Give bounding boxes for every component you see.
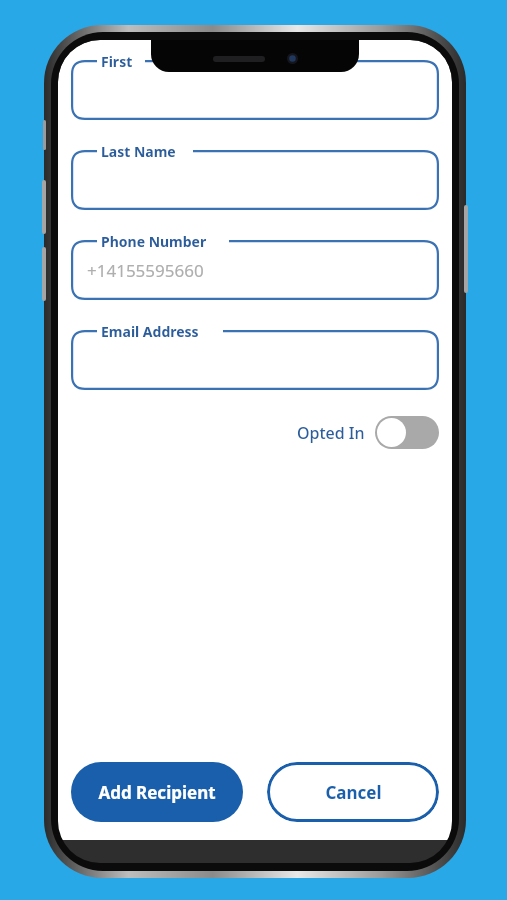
staticText: First [101, 52, 133, 71]
staticText: Email Address [101, 322, 199, 341]
button[interactable]: Phone Number [71, 240, 439, 300]
button[interactable]: Last Name [71, 150, 439, 210]
button[interactable]: First [71, 60, 439, 120]
staticText: Cancel [325, 781, 382, 804]
button[interactable]: Cancel [267, 762, 439, 822]
button[interactable]: Opted In toggle [375, 416, 439, 449]
staticText: Opted In [297, 422, 365, 444]
staticText: +14155595660 [87, 259, 204, 282]
staticText: Phone Number [101, 232, 207, 251]
button[interactable]: Add Recipient [71, 762, 243, 822]
staticText: Last Name [101, 142, 176, 161]
staticText: Add Recipient [98, 781, 216, 804]
button[interactable]: Email Address [71, 330, 439, 390]
button[interactable]: Opted In [71, 416, 439, 449]
